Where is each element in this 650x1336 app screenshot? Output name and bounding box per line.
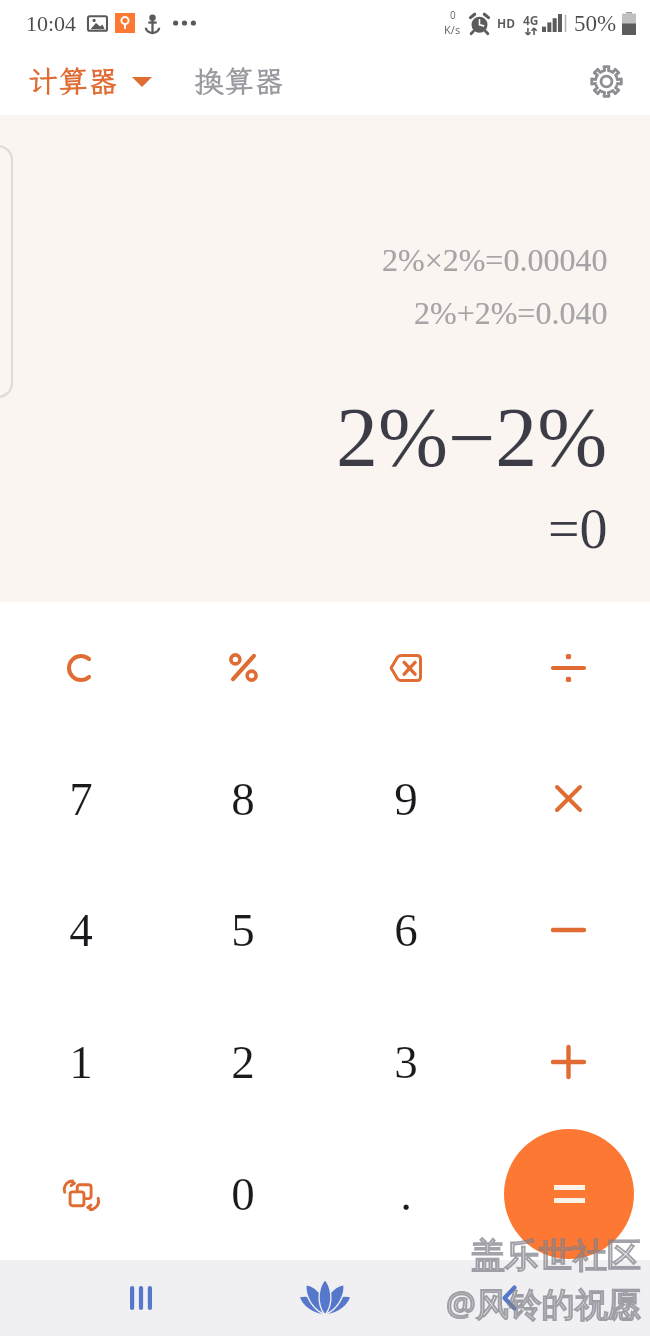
staticText: K/s bbox=[444, 22, 461, 37]
staticText: =0 bbox=[548, 498, 608, 560]
staticText: 3 bbox=[394, 1036, 418, 1088]
button[interactable]: 8 bbox=[162, 733, 324, 864]
staticText: 2%+2%=0.040 bbox=[414, 295, 608, 330]
button[interactable]: 9 bbox=[324, 733, 487, 864]
staticText: 7 bbox=[69, 773, 93, 825]
button[interactable]: 7 bbox=[0, 733, 162, 864]
button[interactable]: Plus bbox=[487, 996, 650, 1128]
staticText: 2%−2% bbox=[336, 391, 608, 484]
staticText: 9 bbox=[394, 773, 418, 825]
staticText: HD bbox=[497, 15, 515, 31]
staticText: 计算器 bbox=[28, 61, 118, 101]
staticText: 1 bbox=[69, 1036, 93, 1088]
staticText: 0 bbox=[231, 1168, 255, 1220]
button[interactable]: 4 bbox=[0, 864, 162, 996]
button[interactable]: 0 bbox=[162, 1128, 324, 1260]
staticText: 10:04 bbox=[26, 11, 77, 35]
button[interactable]: Percent bbox=[162, 602, 324, 733]
button[interactable]: 3 bbox=[324, 996, 487, 1128]
button[interactable]: 1 bbox=[0, 996, 162, 1128]
staticText: 4G bbox=[523, 12, 539, 28]
button[interactable]: 6 bbox=[324, 864, 487, 996]
staticText: 4 bbox=[69, 904, 93, 956]
button[interactable]: 2 bbox=[162, 996, 324, 1128]
button[interactable]: Convert bbox=[0, 1128, 162, 1260]
button[interactable]: Home bbox=[281, 1260, 369, 1336]
button[interactable]: Minus bbox=[487, 864, 650, 996]
button[interactable]: 5 bbox=[162, 864, 324, 996]
button[interactable]: Recents bbox=[97, 1260, 185, 1336]
button[interactable]: Back bbox=[465, 1260, 553, 1336]
staticText: . bbox=[400, 1168, 412, 1220]
staticText: 0 bbox=[450, 8, 456, 22]
button[interactable]: 换算器 bbox=[194, 61, 284, 101]
staticText: 5 bbox=[231, 904, 255, 956]
staticText: 2%×2%=0.00040 bbox=[382, 242, 608, 277]
button[interactable]: Clear bbox=[0, 602, 162, 733]
button[interactable]: Equals bbox=[504, 1129, 634, 1259]
staticText: 盖乐世社区 bbox=[471, 1234, 641, 1277]
button[interactable]: 计算器 bbox=[28, 61, 152, 101]
button[interactable]: Multiply bbox=[487, 733, 650, 864]
button[interactable]: Settings bbox=[584, 59, 628, 103]
staticText: 2 bbox=[231, 1036, 255, 1088]
staticText: @风铃的祝愿 bbox=[446, 1281, 641, 1326]
button[interactable]: Divide bbox=[487, 602, 650, 733]
staticText: 8 bbox=[231, 773, 255, 825]
staticText: 6 bbox=[394, 904, 418, 956]
button[interactable]: Backspace bbox=[324, 602, 487, 733]
button[interactable]: . bbox=[324, 1128, 487, 1260]
staticText: 50% bbox=[574, 11, 617, 36]
